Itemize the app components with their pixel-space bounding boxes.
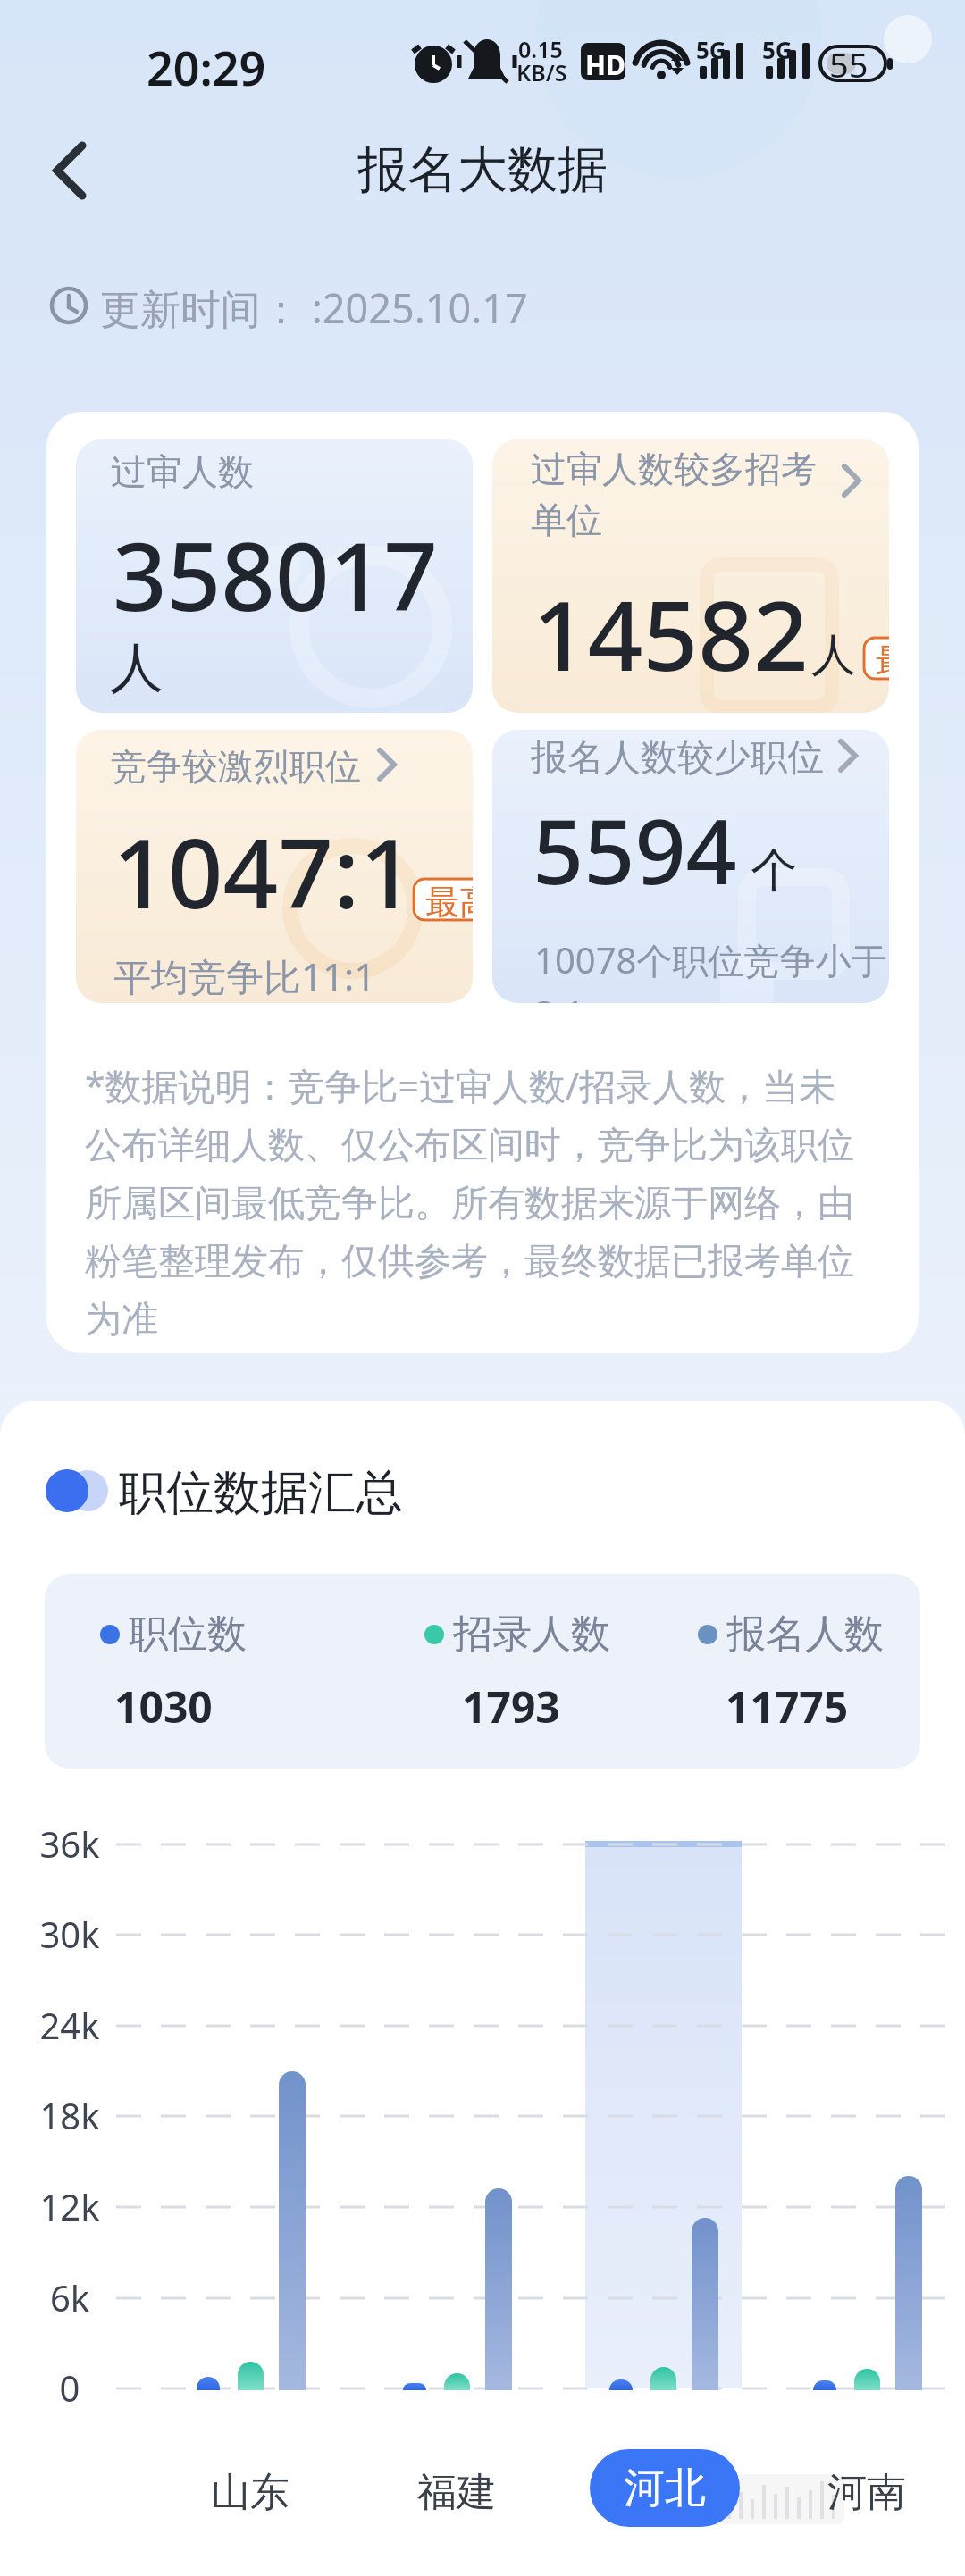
staticText: 11775 [726, 1677, 849, 1735]
button[interactable]: 过审人数 [76, 439, 473, 713]
staticText: 更新时间： :2025.10.17 [100, 280, 528, 335]
button[interactable] [45, 1574, 920, 1769]
button[interactable]: 河北 [590, 2449, 740, 2527]
staticText: 5G [762, 34, 793, 65]
staticText: 最高 [876, 640, 889, 682]
staticText: 55 [829, 41, 868, 88]
staticText: 报名人数较少职位 [531, 735, 824, 782]
button[interactable] [36, 134, 107, 205]
staticText: HD [585, 46, 625, 83]
staticText: 18k [0, 2091, 139, 2139]
staticText: 人 [811, 627, 856, 683]
staticText: 5594 [533, 789, 737, 910]
staticText: 6k [0, 2273, 139, 2321]
staticText: 最高 [425, 881, 473, 924]
staticText: 36k [0, 1819, 139, 1868]
staticText: 人 [110, 634, 164, 702]
staticText: 职位数 [129, 1610, 247, 1659]
staticText: 过审人数较多招考单位 [531, 447, 830, 543]
staticText: 平均竞争比11:1 [113, 950, 376, 1001]
staticText: 0.15 [518, 34, 563, 64]
staticText: KB/S [516, 57, 567, 88]
staticText: 10078个职位竞争小于3:1 [534, 935, 889, 1003]
staticText: 河北 [624, 2463, 706, 2514]
staticText: 个 [751, 841, 797, 900]
staticText: 1793 [462, 1677, 560, 1735]
button[interactable]: 报名人数较少职位 [492, 730, 889, 1003]
staticText: 竞争较激烈职位 [111, 744, 361, 789]
button[interactable]: 竞争较激烈职位 [76, 730, 473, 1003]
staticText: 职位数据汇总 [119, 1463, 403, 1523]
staticText: 0 [0, 2363, 139, 2412]
button[interactable]: 过审人数较多招考单位 [492, 439, 889, 713]
staticText: 358017 [113, 510, 438, 639]
staticText: 24k [0, 2001, 139, 2049]
staticText: 过审人数 [111, 449, 254, 494]
staticText: 招录人数 [453, 1610, 610, 1659]
staticText: 14582 [533, 568, 809, 699]
staticText: 1030 [114, 1677, 213, 1735]
staticText: 1047:1 [113, 806, 415, 937]
staticText: 30k [0, 1910, 139, 1958]
staticText: 5G [696, 34, 726, 65]
staticText: 报名人数 [726, 1610, 884, 1659]
staticText: *数据说明：竞争比=过审人数/招录人数，当未 公布详细人数、仅公布区间时，竞争比… [85, 1060, 854, 1342]
staticText: 12k [0, 2182, 139, 2230]
staticText: 报名大数据 [0, 138, 965, 202]
staticText: 20:29 [147, 36, 266, 99]
